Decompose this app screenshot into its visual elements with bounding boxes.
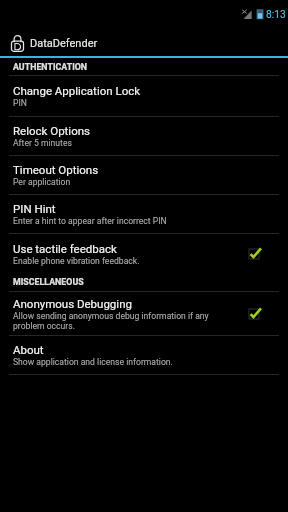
- staticText: After 5 minutes: [13, 138, 72, 148]
- staticText: AUTHENTICATION: [13, 62, 88, 72]
- button[interactable]: Change Application Lock: [0, 76, 288, 117]
- button[interactable]: DataDefender: [0, 26, 288, 56]
- button[interactable]: PIN Hint: [0, 195, 288, 234]
- staticText: DataDefender: [30, 37, 98, 50]
- button[interactable]: Relock Options: [0, 117, 288, 156]
- staticText: Enter a hint to appear after incorrect P…: [13, 216, 167, 226]
- staticText: Use tactile feedback: [13, 242, 117, 255]
- staticText: Timeout Options: [13, 163, 99, 176]
- other: DataDefender: [9, 35, 26, 52]
- staticText: 8:13: [266, 9, 286, 21]
- button[interactable]: Use tactile feedback: [0, 234, 288, 273]
- staticText: PIN: [13, 98, 27, 108]
- staticText: Enable phone vibration feedback.: [13, 256, 140, 266]
- staticText: Per application: [13, 177, 71, 187]
- staticText: Change Application Lock: [13, 84, 141, 97]
- staticText: PIN Hint: [13, 202, 56, 215]
- staticText: About: [13, 343, 44, 356]
- staticText: problem occurs.: [13, 321, 75, 331]
- button[interactable]: About: [0, 336, 288, 375]
- other: Toggle setting: [247, 307, 261, 321]
- other: Toggle setting: [247, 247, 261, 261]
- button[interactable]: Anonymous Debugging: [0, 292, 288, 336]
- staticText: Anonymous Debugging: [13, 297, 132, 310]
- staticText: Show application and license information…: [13, 357, 173, 367]
- button[interactable]: Timeout Options: [0, 156, 288, 195]
- staticText: Relock Options: [13, 124, 91, 137]
- staticText: Allow sending anonymous debug informatio…: [13, 311, 209, 321]
- staticText: MISCELLANEOUS: [13, 277, 84, 287]
